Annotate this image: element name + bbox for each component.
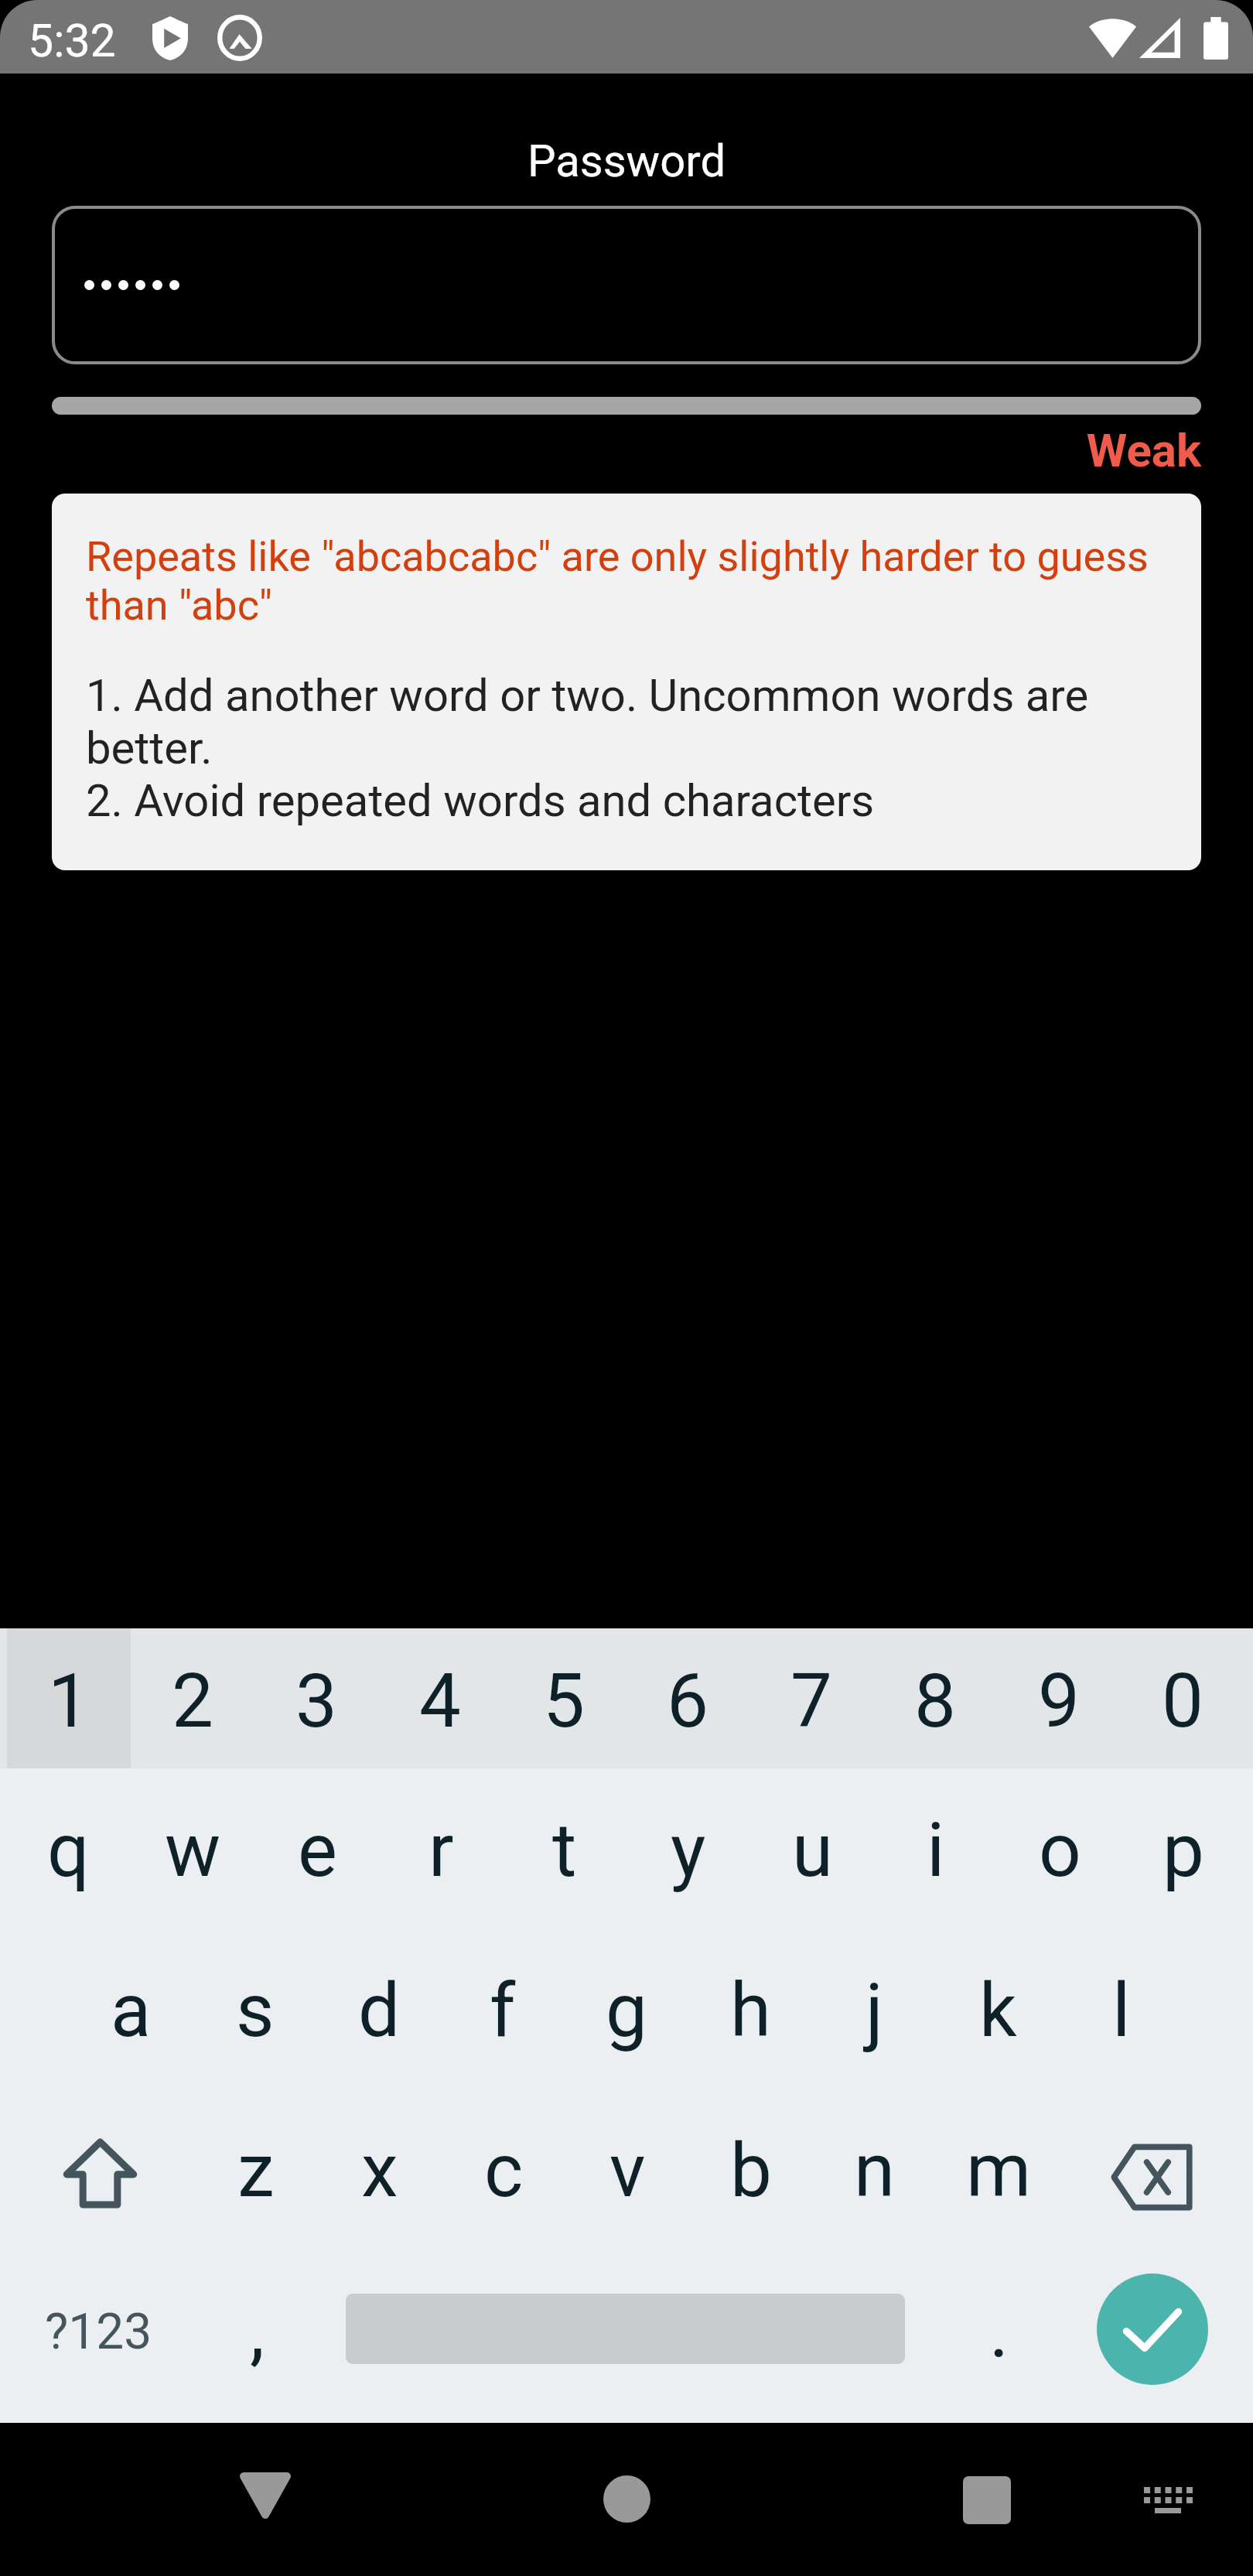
button[interactable]: 6 — [626, 1628, 749, 1768]
staticText: y — [671, 1807, 706, 1894]
button[interactable]: ?123 — [0, 2249, 196, 2409]
button[interactable] — [52, 206, 1201, 364]
button[interactable]: 5 — [502, 1628, 626, 1768]
button[interactable]: b — [689, 2089, 813, 2249]
button[interactable]: d — [317, 1929, 441, 2089]
button[interactable]: n — [813, 2089, 937, 2249]
staticText: k — [979, 1967, 1017, 2055]
button[interactable]: u — [750, 1768, 874, 1929]
staticText: x — [361, 2127, 398, 2215]
staticText: j — [865, 1967, 883, 2055]
button[interactable]: Shift — [0, 2089, 193, 2249]
staticText: b — [730, 2127, 772, 2215]
button[interactable]: l — [1060, 1929, 1183, 2089]
staticText: l — [1112, 1967, 1131, 2055]
staticText: 5 — [543, 1658, 585, 1745]
staticText: m — [966, 2127, 1032, 2215]
staticText: g — [606, 1967, 647, 2055]
staticText: . — [989, 2287, 1009, 2375]
staticText: 8 — [914, 1658, 956, 1745]
staticText: r — [428, 1807, 454, 1894]
button[interactable]: 8 — [873, 1628, 997, 1768]
button[interactable]: o — [998, 1768, 1122, 1929]
staticText: z — [237, 2127, 275, 2215]
staticText: u — [792, 1807, 833, 1894]
staticText: ?123 — [45, 2303, 152, 2361]
button[interactable]: x — [318, 2089, 442, 2249]
button[interactable]: t — [503, 1768, 626, 1929]
button[interactable]: 0 — [1121, 1628, 1244, 1768]
staticText: Password — [0, 135, 1253, 187]
staticText: o — [1039, 1807, 1081, 1894]
button[interactable]: 2 — [131, 1628, 254, 1768]
button[interactable]: z — [193, 2089, 318, 2249]
button[interactable]: q — [6, 1768, 131, 1929]
button[interactable]: p — [1122, 1768, 1245, 1929]
button[interactable]: Space — [317, 2249, 936, 2409]
staticText: s — [236, 1967, 275, 2055]
button[interactable]: 9 — [997, 1628, 1121, 1768]
staticText: i — [927, 1807, 945, 1894]
staticText: n — [854, 2127, 896, 2215]
button[interactable]: Backspace — [1060, 2089, 1253, 2249]
button[interactable]: v — [565, 2089, 689, 2249]
staticText: 7 — [790, 1658, 832, 1745]
button[interactable]: Switch keyboard — [1144, 2487, 1193, 2515]
staticText: v — [609, 2127, 646, 2215]
button[interactable]: Home — [603, 2475, 650, 2523]
staticText: 3 — [295, 1658, 337, 1745]
staticText: 6 — [667, 1658, 708, 1745]
staticText: Repeats like "abcabcabc" are only slight… — [86, 532, 1167, 630]
button[interactable]: r — [379, 1768, 503, 1929]
staticText: w — [165, 1807, 221, 1894]
staticText: 1. Add another word or two. Uncommon wor… — [86, 669, 1167, 827]
button[interactable]: Enter — [1060, 2249, 1253, 2409]
button[interactable]: k — [936, 1929, 1060, 2089]
staticText: 5:32 — [28, 14, 116, 67]
button[interactable]: m — [937, 2089, 1060, 2249]
staticText: 4 — [419, 1658, 461, 1745]
staticText: c — [484, 2127, 524, 2215]
button[interactable]: 4 — [378, 1628, 502, 1768]
button[interactable]: 1 — [7, 1628, 131, 1768]
staticText: 9 — [1038, 1658, 1080, 1745]
button[interactable]: g — [565, 1929, 688, 2089]
staticText: Weak — [0, 423, 1201, 477]
staticText: 1 — [48, 1658, 90, 1745]
staticText: 2 — [172, 1658, 213, 1745]
button[interactable]: c — [442, 2089, 565, 2249]
staticText: q — [47, 1807, 90, 1894]
button[interactable]: Back — [240, 2474, 291, 2519]
button[interactable]: s — [193, 1929, 317, 2089]
staticText: a — [111, 1967, 152, 2055]
button[interactable]: 7 — [749, 1628, 873, 1768]
staticText: 0 — [1162, 1658, 1203, 1745]
staticText: d — [358, 1967, 401, 2055]
button[interactable]: , — [196, 2249, 317, 2409]
button[interactable]: f — [441, 1929, 565, 2089]
staticText: e — [298, 1807, 337, 1894]
staticText: t — [552, 1807, 577, 1894]
button[interactable]: y — [626, 1768, 750, 1929]
button[interactable]: i — [874, 1768, 998, 1929]
button[interactable]: w — [131, 1768, 255, 1929]
staticText: h — [730, 1967, 771, 2055]
staticText: p — [1163, 1807, 1204, 1894]
staticText: , — [250, 2287, 265, 2375]
button[interactable]: 3 — [254, 1628, 378, 1768]
button[interactable]: a — [69, 1929, 193, 2089]
button[interactable]: Recents — [963, 2476, 1011, 2524]
button[interactable]: j — [812, 1929, 936, 2089]
staticText: f — [490, 1967, 516, 2055]
button[interactable]: e — [255, 1768, 379, 1929]
button[interactable]: h — [688, 1929, 812, 2089]
button[interactable]: . — [936, 2249, 1060, 2409]
